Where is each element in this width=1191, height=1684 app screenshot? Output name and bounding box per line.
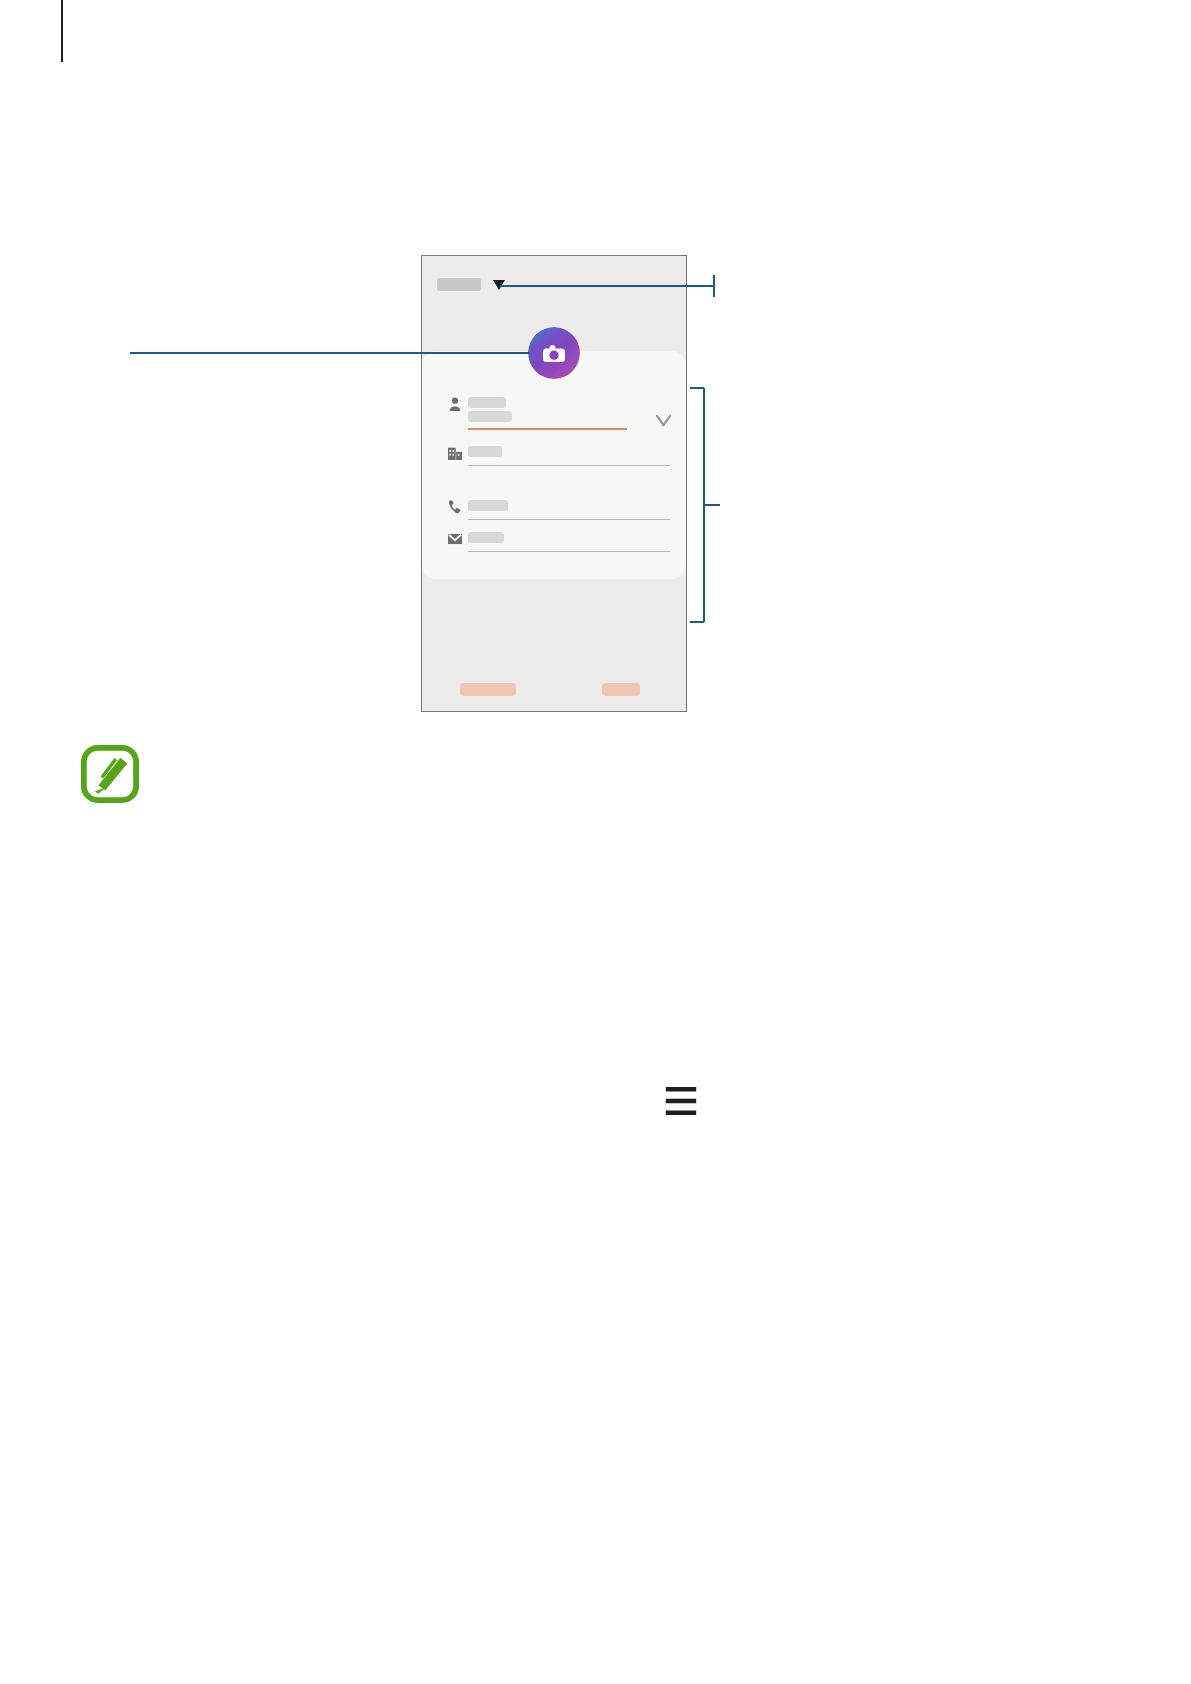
button[interactable] xyxy=(435,276,507,293)
button[interactable]: Change photo xyxy=(528,327,580,379)
button[interactable] xyxy=(421,683,554,696)
button[interactable] xyxy=(422,528,686,552)
button[interactable] xyxy=(422,393,686,411)
button[interactable] xyxy=(422,411,686,430)
button[interactable]: Menu xyxy=(661,1080,701,1122)
button[interactable] xyxy=(422,496,686,520)
button[interactable] xyxy=(422,442,686,466)
button[interactable] xyxy=(554,683,687,696)
